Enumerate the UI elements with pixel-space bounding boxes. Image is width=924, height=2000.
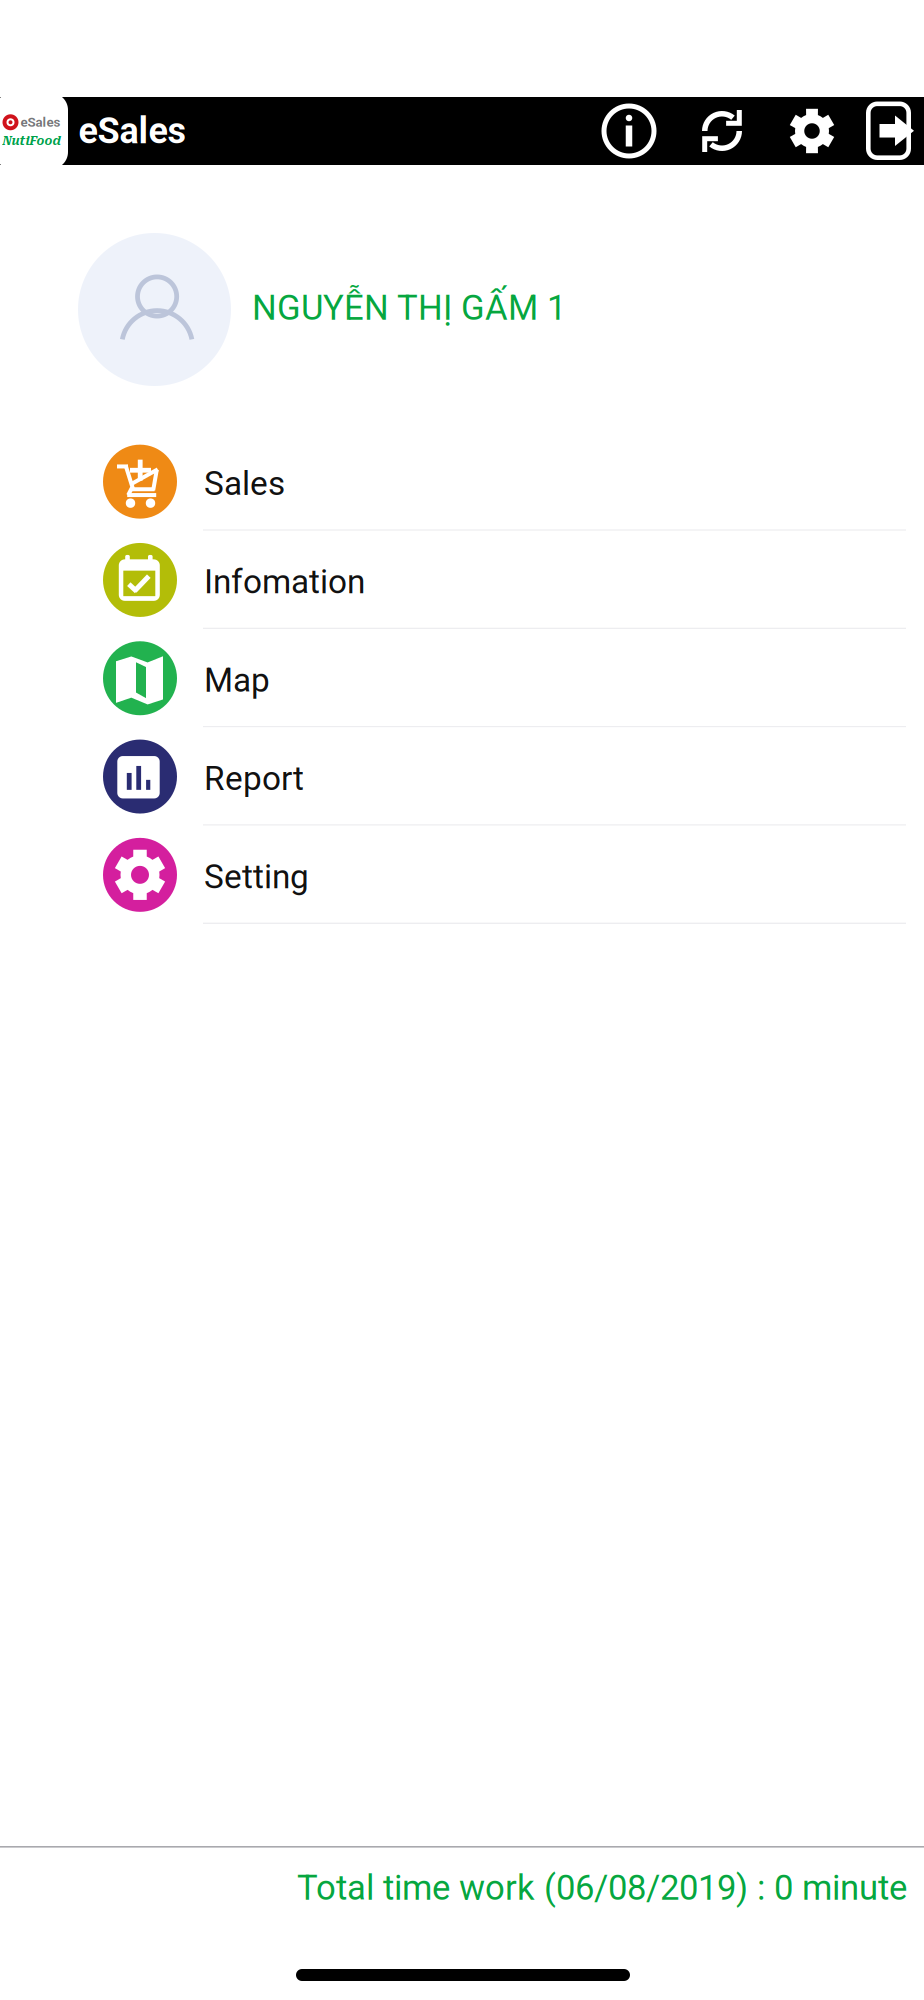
staticText: Setting bbox=[204, 857, 309, 896]
button[interactable]: Setting bbox=[0, 826, 924, 924]
staticText: Infomation bbox=[204, 562, 365, 601]
staticText: Map bbox=[204, 661, 270, 700]
button[interactable]: Map bbox=[0, 629, 924, 727]
staticText: eSales bbox=[78, 110, 185, 152]
button[interactable]: Sync bbox=[696, 105, 748, 157]
button[interactable]: Sales bbox=[0, 432, 924, 531]
staticText: eSales bbox=[20, 114, 60, 130]
staticText: NutiFood bbox=[2, 134, 60, 148]
staticText: Sales bbox=[204, 464, 285, 503]
button[interactable]: Infomation bbox=[0, 531, 924, 629]
staticText: NGUYỄN THỊ GẤM 1 bbox=[252, 288, 566, 328]
button[interactable]: Report bbox=[0, 727, 924, 826]
staticText: Report bbox=[204, 759, 304, 798]
button[interactable]: eSales NutiFood bbox=[0, 93, 68, 169]
button[interactable]: Information bbox=[601, 103, 657, 159]
button[interactable]: Log out bbox=[866, 101, 914, 160]
staticText: Total time work (06/08/2019) : 0 minute bbox=[297, 1868, 907, 1908]
button[interactable]: Settings bbox=[786, 105, 838, 157]
button[interactable]: NGUYỄN THỊ GẤM 1 bbox=[78, 233, 924, 386]
